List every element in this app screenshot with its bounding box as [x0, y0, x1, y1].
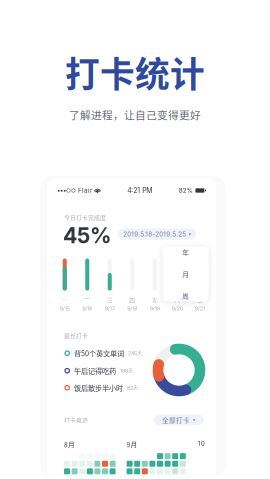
staticText: 打卡痕迹 [64, 416, 88, 424]
staticText: ••• [57, 187, 66, 194]
staticText: 二 [84, 295, 90, 304]
staticText: 饭后散步半小时 [74, 382, 123, 393]
staticText: 9/21 [195, 305, 205, 312]
button[interactable]: 2019.5.18-2019.5.25 [118, 228, 196, 240]
staticText: 周 [182, 291, 189, 300]
button[interactable]: 月 [182, 269, 189, 279]
staticText: 45% [63, 222, 111, 248]
staticText: 四 [129, 295, 135, 304]
staticText: 9/15 [60, 305, 70, 312]
staticText: 10 [198, 439, 205, 447]
staticText: 9/18 [127, 305, 137, 312]
staticText: 年 [182, 247, 189, 257]
staticText: 全部打卡 [162, 415, 190, 425]
staticText: ○○ [66, 187, 76, 194]
staticText: 日 [197, 295, 203, 304]
staticText: 三 [107, 295, 113, 304]
staticText: 五 [152, 295, 158, 304]
button[interactable]: 全部打卡 [154, 414, 204, 425]
staticText: 8月 [64, 439, 75, 449]
staticText: 最长打卡 [64, 331, 88, 339]
button[interactable]: 周 [182, 291, 189, 300]
staticText: 六 [174, 295, 180, 304]
staticText: ▾ [189, 232, 191, 237]
staticText: ▾ [193, 417, 195, 423]
staticText: 9/16 [82, 305, 92, 312]
staticText: 9/17 [105, 305, 115, 312]
staticText: 4:21 PM [127, 186, 152, 195]
staticText: 9月 [127, 439, 138, 449]
staticText: 了解进程，让自己变得更好 [69, 107, 201, 122]
staticText: 198天 [120, 367, 133, 374]
staticText: 一 [62, 295, 68, 304]
staticText: 2019.5.18-2019.5.25 [123, 230, 186, 238]
staticText: Flair [78, 187, 92, 194]
staticText: 月 [182, 269, 189, 279]
staticText: 82% [179, 187, 193, 194]
staticText: 打卡统计 [65, 47, 205, 97]
staticText: 9/19 [150, 305, 160, 312]
button[interactable]: 年 [182, 247, 189, 257]
staticText: 背50个英文单词 [74, 348, 124, 358]
staticText: 82天 [127, 384, 138, 391]
staticText: 今日打卡完成度 [64, 213, 106, 221]
staticText: 9/20 [172, 305, 183, 312]
staticText: 245天 [128, 350, 142, 357]
staticText: 午后记得吃药 [74, 365, 116, 376]
